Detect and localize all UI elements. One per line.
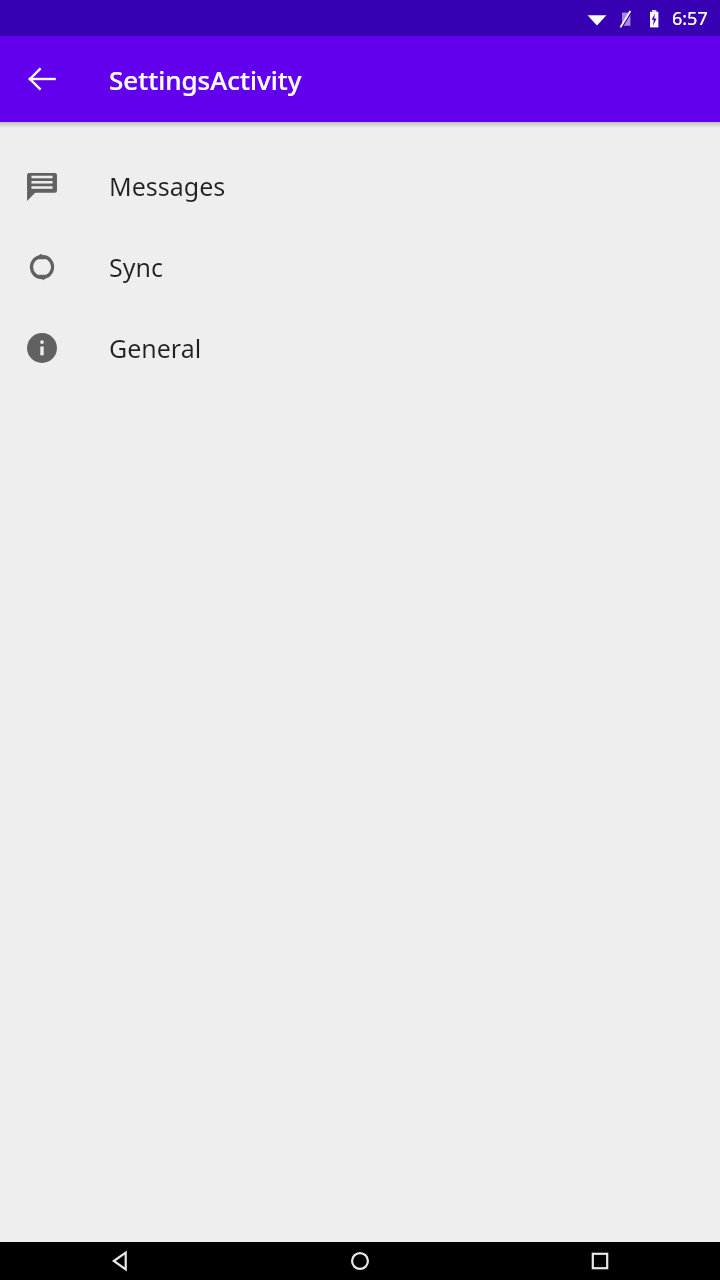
button[interactable]: Recent apps (480, 1242, 720, 1280)
staticText: SettingsActivity (109, 62, 302, 97)
button[interactable]: Home (240, 1242, 480, 1280)
staticText: General (109, 331, 202, 365)
button[interactable]: Messages (0, 145, 720, 226)
staticText: Messages (109, 169, 226, 203)
button[interactable]: Sync (0, 226, 720, 307)
button[interactable]: Back (12, 49, 72, 109)
staticText: Sync (109, 250, 163, 284)
button[interactable]: General (0, 307, 720, 388)
staticText: 6:57 (672, 6, 708, 31)
button[interactable]: Back (0, 1242, 240, 1280)
